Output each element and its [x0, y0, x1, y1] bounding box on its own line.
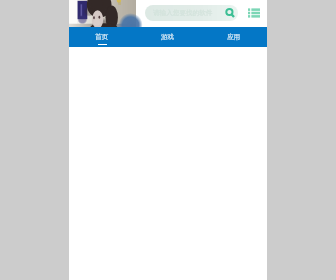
staticText: 请输入您要找的软件 — [153, 9, 213, 17]
button[interactable]: Menu — [247, 6, 261, 20]
staticText: 首页 — [95, 33, 109, 41]
button[interactable]: 首页 — [69, 27, 135, 47]
button[interactable]: Search — [222, 5, 238, 21]
button[interactable]: 请输入您要找的软件 — [145, 5, 238, 21]
staticText: 游戏 — [161, 33, 175, 41]
button[interactable]: 应用 — [201, 27, 267, 47]
staticText: 应用 — [227, 33, 241, 41]
button[interactable]: 游戏 — [135, 27, 201, 47]
